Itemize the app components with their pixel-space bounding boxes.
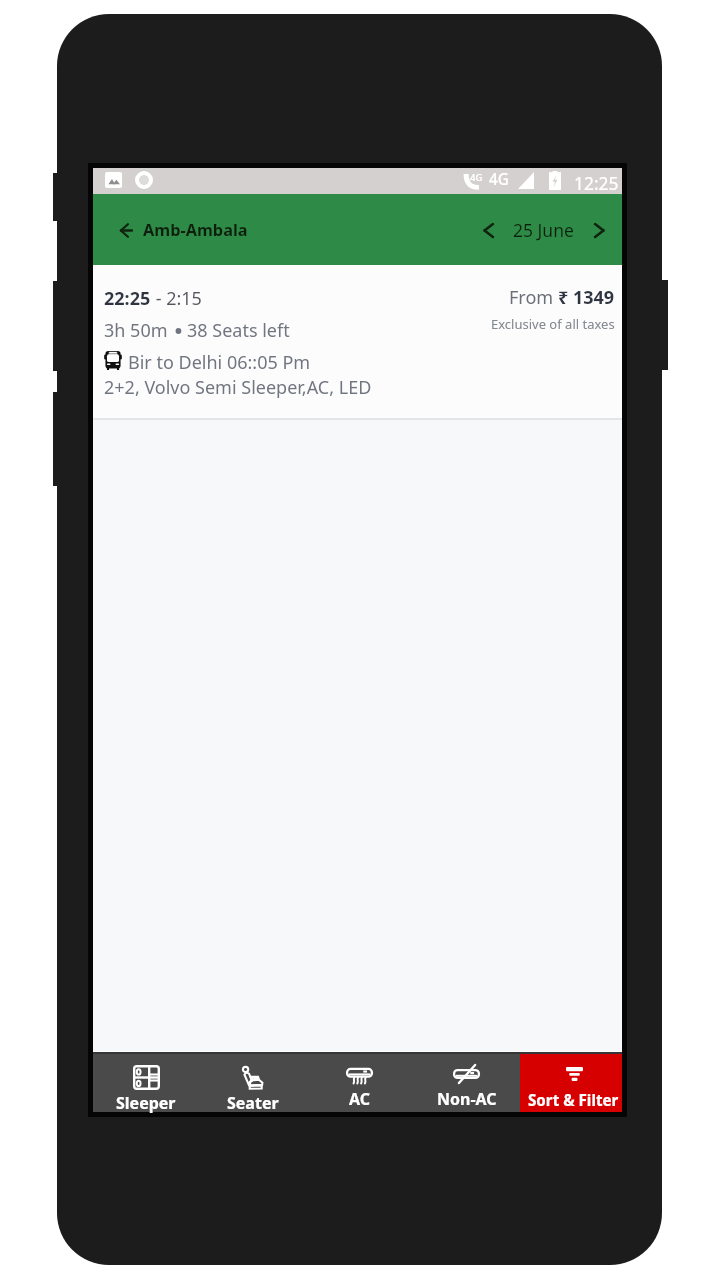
staticText: Sleeper <box>116 1092 176 1114</box>
staticText: Sort & Filter <box>528 1090 619 1111</box>
staticText: 38 Seats left <box>187 318 290 343</box>
button[interactable]: Previous day <box>482 222 496 239</box>
button[interactable]: AC <box>306 1054 413 1112</box>
staticText: Exclusive of all taxes <box>491 315 615 333</box>
staticText: 4G <box>470 171 483 184</box>
button[interactable]: Non-AC <box>413 1054 520 1112</box>
staticText: 22:25 <box>104 286 151 311</box>
button[interactable]: Sleeper <box>93 1054 199 1112</box>
button[interactable]: Sort & Filter <box>520 1054 622 1112</box>
staticText: From <box>509 285 558 310</box>
staticText: ₹ 1349 <box>558 285 615 310</box>
button[interactable]: Seater <box>199 1054 306 1112</box>
button[interactable]: Next day <box>592 222 606 239</box>
button[interactable]: 22:25 <box>93 265 622 420</box>
staticText: 2+2, Volvo Semi Sleeper,AC, LED <box>104 375 372 400</box>
staticText: Bir to Delhi 06::05 Pm <box>128 350 311 375</box>
staticText: - 2:15 <box>151 286 202 311</box>
staticText: AC <box>349 1088 371 1110</box>
staticText: Seater <box>227 1092 279 1114</box>
staticText: Amb-Ambala <box>143 219 248 241</box>
staticText: Non-AC <box>437 1088 497 1110</box>
staticText: 12:25 <box>574 171 619 195</box>
button[interactable]: Back <box>120 224 132 237</box>
staticText: 3h 50m <box>104 318 168 343</box>
staticText: 4G <box>489 169 509 190</box>
staticText: 25 June <box>513 218 574 242</box>
